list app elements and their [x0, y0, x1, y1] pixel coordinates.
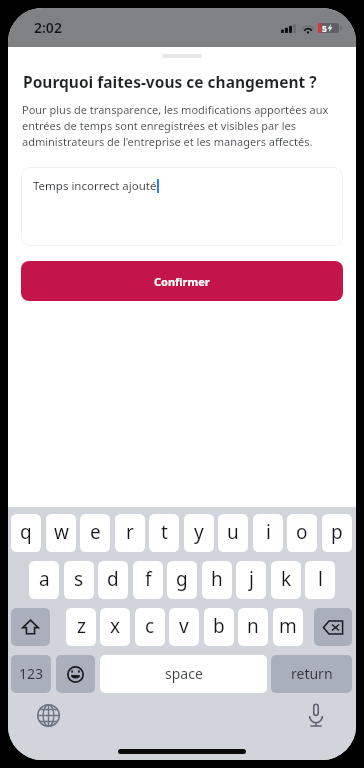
button[interactable]: g	[167, 561, 197, 599]
staticText: j	[249, 566, 254, 592]
staticText: w	[54, 519, 69, 545]
staticText: n	[247, 613, 259, 639]
button[interactable]: n	[238, 608, 268, 646]
button[interactable]: a	[29, 561, 59, 599]
button[interactable]: Emoji	[56, 655, 95, 693]
button[interactable]: m	[273, 608, 303, 646]
button[interactable]: f	[133, 561, 163, 599]
staticText: 123	[19, 664, 44, 683]
staticText: s	[74, 566, 84, 592]
button[interactable]: d	[98, 561, 128, 599]
staticText: 2:02	[34, 18, 62, 37]
button[interactable]: Change keyboard	[35, 702, 61, 728]
button[interactable]: Dictation	[303, 702, 329, 728]
staticText: a	[39, 566, 50, 592]
staticText: 5	[322, 23, 327, 33]
button[interactable]: e	[80, 514, 110, 552]
staticText: t	[161, 519, 168, 545]
staticText: b	[213, 613, 225, 639]
staticText: k	[281, 566, 292, 592]
button[interactable]: t	[149, 514, 179, 552]
staticText: l	[318, 566, 323, 592]
button[interactable]: p	[322, 514, 352, 552]
button[interactable]: Temps incorrect ajouté	[21, 167, 343, 246]
staticText: Temps incorrect ajouté	[33, 178, 157, 194]
staticText: c	[145, 613, 155, 639]
button[interactable]: return	[271, 655, 352, 693]
button[interactable]: x	[100, 608, 130, 646]
button[interactable]: Confirmer	[21, 261, 343, 301]
staticText: d	[107, 566, 119, 592]
staticText: v	[179, 613, 189, 639]
button[interactable]: i	[253, 514, 283, 552]
staticText: r	[126, 519, 134, 545]
staticText: h	[211, 566, 223, 592]
button[interactable]: q	[11, 514, 41, 552]
button[interactable]: u	[218, 514, 248, 552]
staticText: Confirmer	[154, 274, 210, 289]
button[interactable]: j	[236, 561, 266, 599]
button[interactable]: o	[287, 514, 317, 552]
button[interactable]: r	[115, 514, 145, 552]
button[interactable]: z	[66, 608, 96, 646]
button[interactable]: k	[271, 561, 301, 599]
staticText: z	[77, 613, 86, 639]
staticText: f	[145, 566, 152, 592]
staticText: m	[279, 613, 297, 639]
button[interactable]: Shift	[11, 608, 50, 646]
staticText: e	[90, 519, 101, 545]
staticText: space	[165, 664, 203, 683]
button[interactable]: c	[135, 608, 165, 646]
staticText: u	[227, 519, 239, 545]
staticText: x	[110, 613, 121, 639]
staticText: Pourquoi faites-vous ce changement ?	[23, 71, 317, 92]
staticText: i	[266, 519, 271, 545]
staticText: p	[331, 519, 343, 545]
staticText: q	[20, 519, 32, 545]
button[interactable]: 123	[11, 655, 51, 693]
staticText: return	[291, 664, 333, 683]
staticText: o	[296, 519, 308, 545]
button[interactable]: l	[305, 561, 335, 599]
button[interactable]: y	[184, 514, 214, 552]
staticText: y	[194, 519, 204, 545]
button[interactable]: v	[169, 608, 199, 646]
staticText: Pour plus de transparence, les modificat…	[22, 102, 342, 149]
button[interactable]: s	[64, 561, 94, 599]
staticText: g	[176, 566, 188, 592]
button[interactable]: w	[46, 514, 76, 552]
button[interactable]: Backspace	[314, 608, 352, 646]
button[interactable]: h	[202, 561, 232, 599]
button[interactable]: b	[204, 608, 234, 646]
button[interactable]: space	[100, 655, 267, 693]
